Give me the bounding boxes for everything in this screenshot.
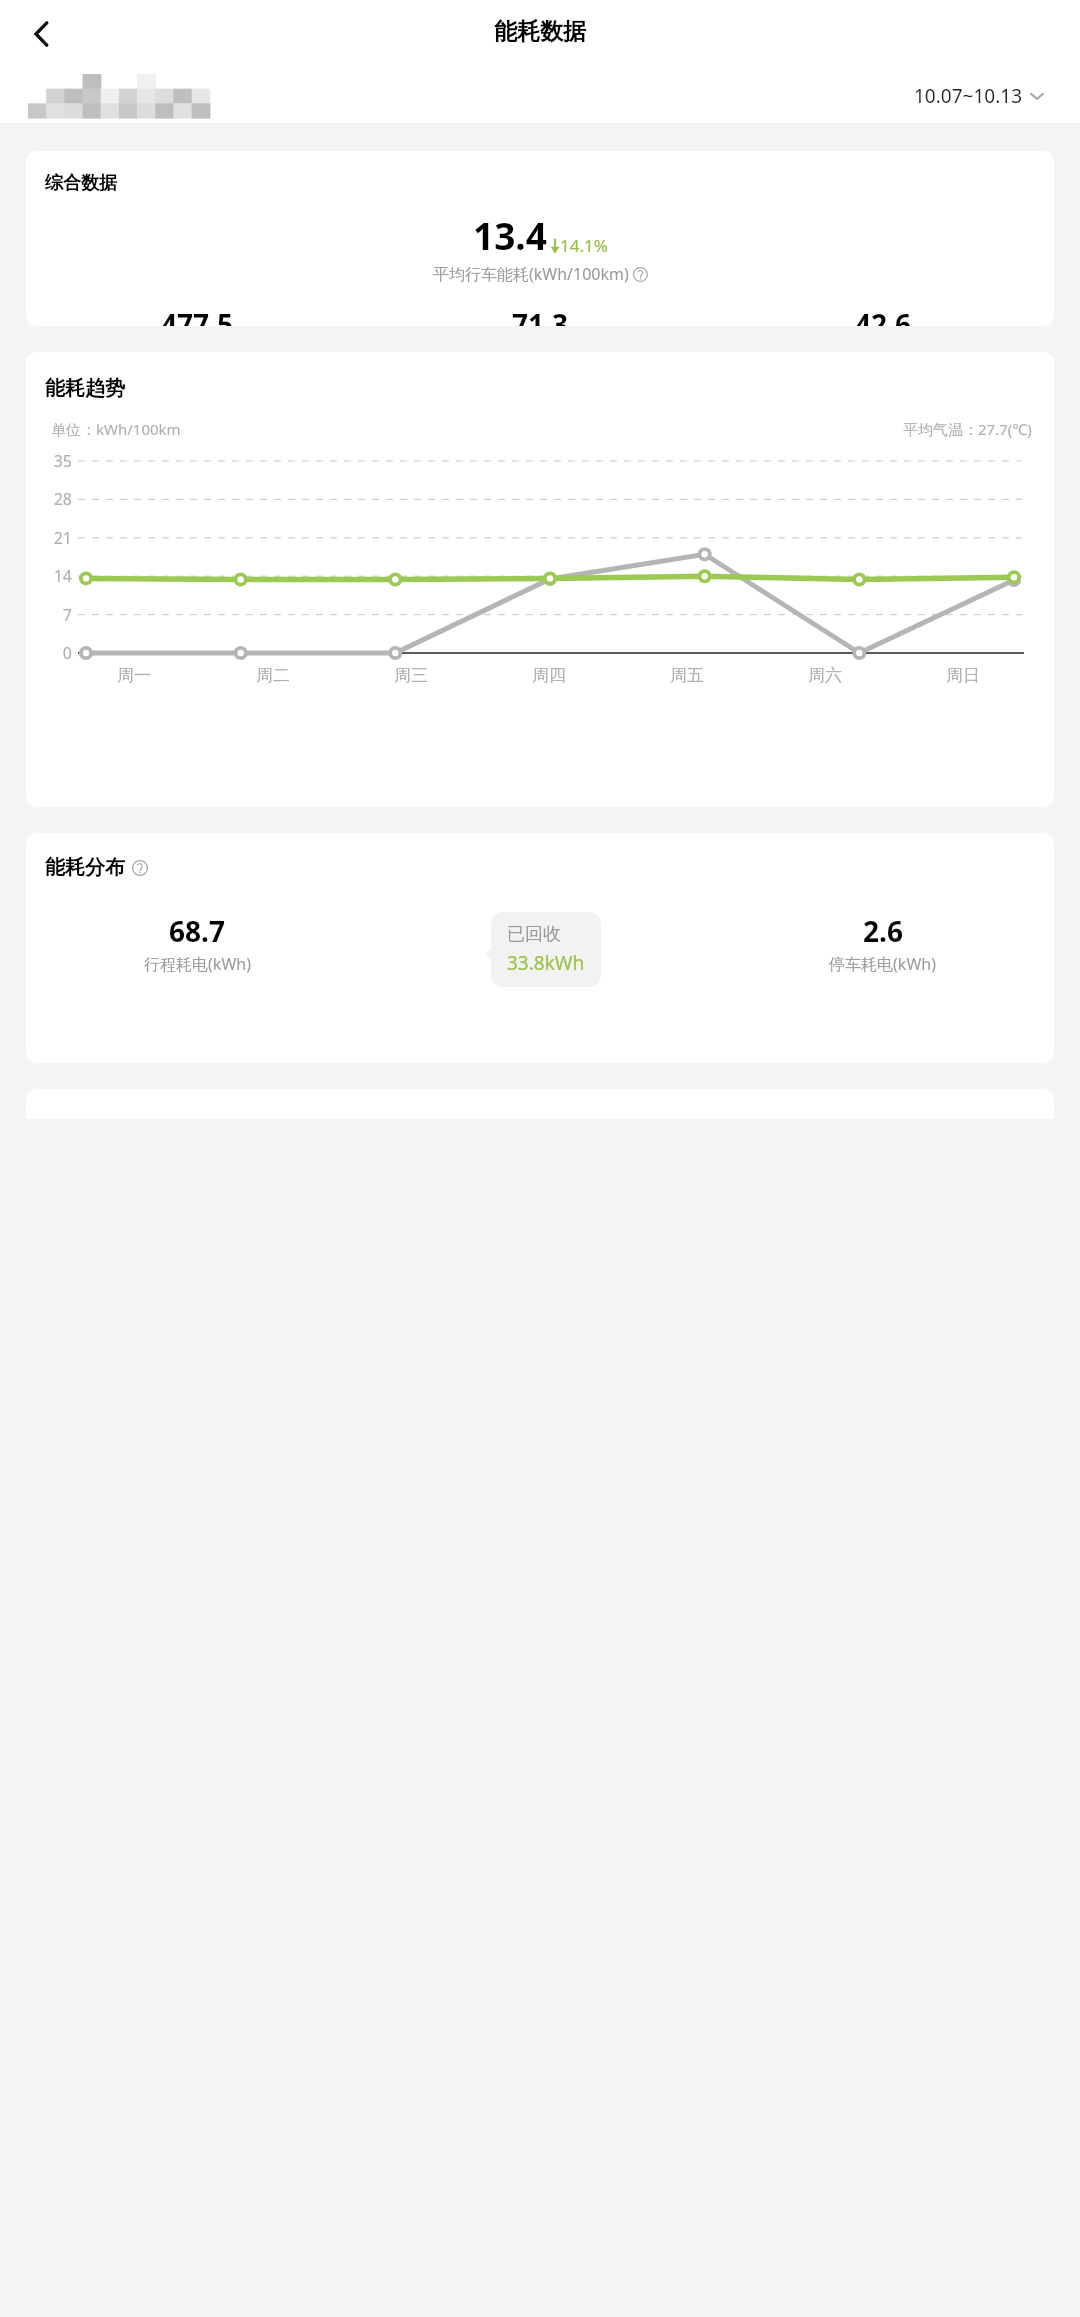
staticText: 周二: [256, 665, 290, 686]
staticText: 周三: [394, 665, 428, 686]
button[interactable]: 综合数据: [26, 151, 1054, 326]
button[interactable]: 477.5: [26, 305, 368, 326]
staticText: 0: [26, 642, 72, 664]
staticText: 已回收: [507, 923, 561, 946]
staticText: 33.8kWh: [507, 950, 585, 976]
staticText: 停车耗电(kWh): [829, 953, 936, 975]
staticText: 71.3: [512, 305, 568, 326]
staticText: 10.07~10.13: [914, 83, 1022, 109]
staticText: 平均行车能耗(kWh/100km): [433, 263, 629, 285]
staticText: 21: [26, 527, 72, 549]
staticText: 能耗分布: [45, 855, 125, 880]
staticText: 42.6: [855, 305, 911, 326]
staticText: 单位：kWh/100km: [51, 419, 181, 439]
staticText: 13.4: [473, 210, 547, 260]
button[interactable]: 能耗趋势: [26, 352, 1054, 807]
button[interactable]: 68.7: [26, 912, 368, 975]
staticText: 28: [26, 488, 72, 510]
staticText: 周四: [532, 665, 566, 686]
staticText: 14: [26, 565, 72, 587]
staticText: 35: [26, 450, 72, 472]
staticText: 14.1%: [560, 234, 608, 257]
staticText: 2.6: [863, 912, 903, 950]
button[interactable]: 2.6: [711, 912, 1054, 975]
staticText: 477.5: [161, 305, 233, 326]
staticText: 68.7: [169, 912, 225, 950]
staticText: 周日: [946, 665, 980, 686]
staticText: 平均气温：27.7(℃): [903, 419, 1032, 439]
button[interactable]: 71.3: [368, 305, 711, 326]
button[interactable]: 能耗分布: [26, 833, 1054, 1063]
staticText: 7: [26, 604, 72, 626]
staticText: 周六: [808, 665, 842, 686]
staticText: 能耗数据: [494, 17, 586, 46]
staticText: 周一: [117, 665, 151, 686]
button[interactable]: 42.6: [711, 305, 1054, 326]
staticText: 综合数据: [45, 172, 117, 195]
staticText: 能耗趋势: [45, 376, 125, 401]
button[interactable]: 10.07~10.13: [914, 83, 1046, 109]
button[interactable]: 已回收: [491, 912, 601, 987]
staticText: 周五: [670, 665, 704, 686]
button[interactable]: Back: [14, 6, 70, 62]
staticText: 行程耗电(kWh): [144, 953, 251, 975]
